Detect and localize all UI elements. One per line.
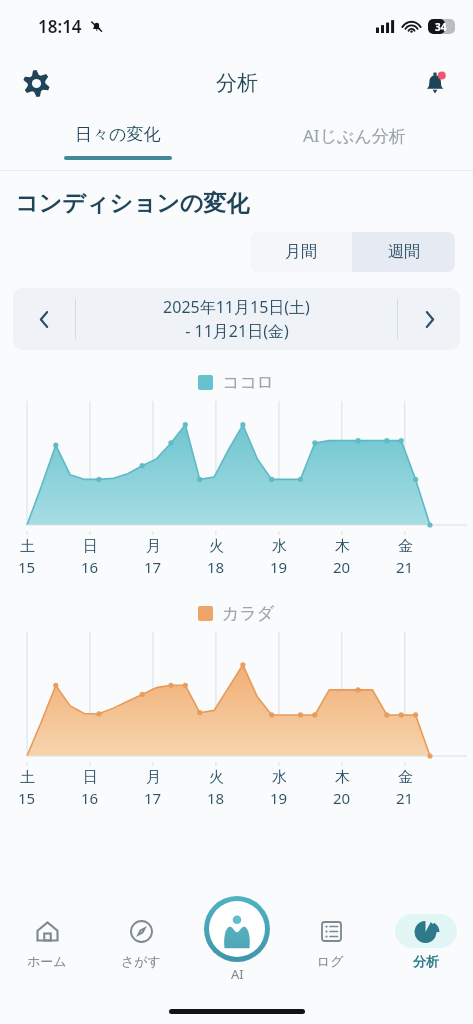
button[interactable]: ログ bbox=[283, 900, 378, 996]
button[interactable]: Notifications bbox=[411, 59, 459, 107]
staticText: 17 bbox=[144, 557, 162, 577]
staticText: AIじぶん分析 bbox=[303, 124, 406, 147]
staticText: ココロ bbox=[222, 372, 275, 393]
button[interactable]: Next week bbox=[398, 288, 460, 350]
button[interactable]: 日々の変化 bbox=[0, 114, 236, 170]
staticText: 20 bbox=[333, 788, 351, 808]
staticText: 17 bbox=[144, 788, 162, 808]
staticText: 水 bbox=[272, 537, 287, 556]
staticText: 15 bbox=[18, 557, 36, 577]
staticText: カラダ bbox=[222, 603, 275, 624]
staticText: 15 bbox=[18, 788, 36, 808]
staticText: 週間 bbox=[388, 242, 420, 262]
button[interactable]: Previous week bbox=[13, 288, 75, 350]
staticText: 金 bbox=[398, 537, 413, 556]
button[interactable]: さがす bbox=[94, 900, 188, 996]
staticText: 16 bbox=[81, 557, 99, 577]
staticText: 木 bbox=[335, 768, 350, 787]
staticText: さがす bbox=[121, 953, 161, 969]
staticText: ログ bbox=[317, 953, 344, 969]
staticText: 18 bbox=[207, 788, 225, 808]
staticText: 土 bbox=[20, 768, 35, 787]
button[interactable]: 月間 bbox=[250, 232, 352, 272]
button[interactable]: 週間 bbox=[352, 232, 455, 272]
staticText: 分析 bbox=[216, 70, 258, 96]
staticText: 金 bbox=[398, 768, 413, 787]
staticText: 日々の変化 bbox=[75, 124, 161, 145]
staticText: 18 bbox=[207, 557, 225, 577]
button[interactable]: AI bbox=[204, 896, 270, 983]
staticText: 34 bbox=[435, 20, 447, 34]
staticText: 19 bbox=[270, 788, 288, 808]
button[interactable]: ホーム bbox=[0, 900, 94, 996]
staticText: 分析 bbox=[413, 953, 439, 969]
staticText: 21 bbox=[396, 788, 414, 808]
staticText: 火 bbox=[209, 537, 224, 556]
staticText: ホーム bbox=[27, 953, 67, 969]
staticText: - 11月21日(金) bbox=[185, 320, 289, 342]
staticText: 水 bbox=[272, 768, 287, 787]
staticText: 火 bbox=[209, 768, 224, 787]
staticText: 19 bbox=[270, 557, 288, 577]
staticText: 日 bbox=[83, 768, 98, 787]
staticText: 月 bbox=[146, 768, 161, 787]
staticText: AI bbox=[231, 965, 244, 983]
staticText: 土 bbox=[20, 537, 35, 556]
staticText: コンディションの変化 bbox=[15, 189, 250, 218]
button[interactable]: Settings bbox=[12, 59, 60, 107]
staticText: 月 bbox=[146, 537, 161, 556]
staticText: 木 bbox=[335, 537, 350, 556]
staticText: 21 bbox=[396, 557, 414, 577]
staticText: 16 bbox=[81, 788, 99, 808]
staticText: 2025年11月15日(土) bbox=[163, 296, 310, 318]
staticText: 日 bbox=[83, 537, 98, 556]
staticText: 20 bbox=[333, 557, 351, 577]
button[interactable]: AIじぶん分析 bbox=[236, 114, 473, 170]
staticText: 18:14 bbox=[38, 15, 82, 38]
staticText: 月間 bbox=[285, 242, 317, 262]
button[interactable]: 分析 bbox=[378, 900, 473, 996]
